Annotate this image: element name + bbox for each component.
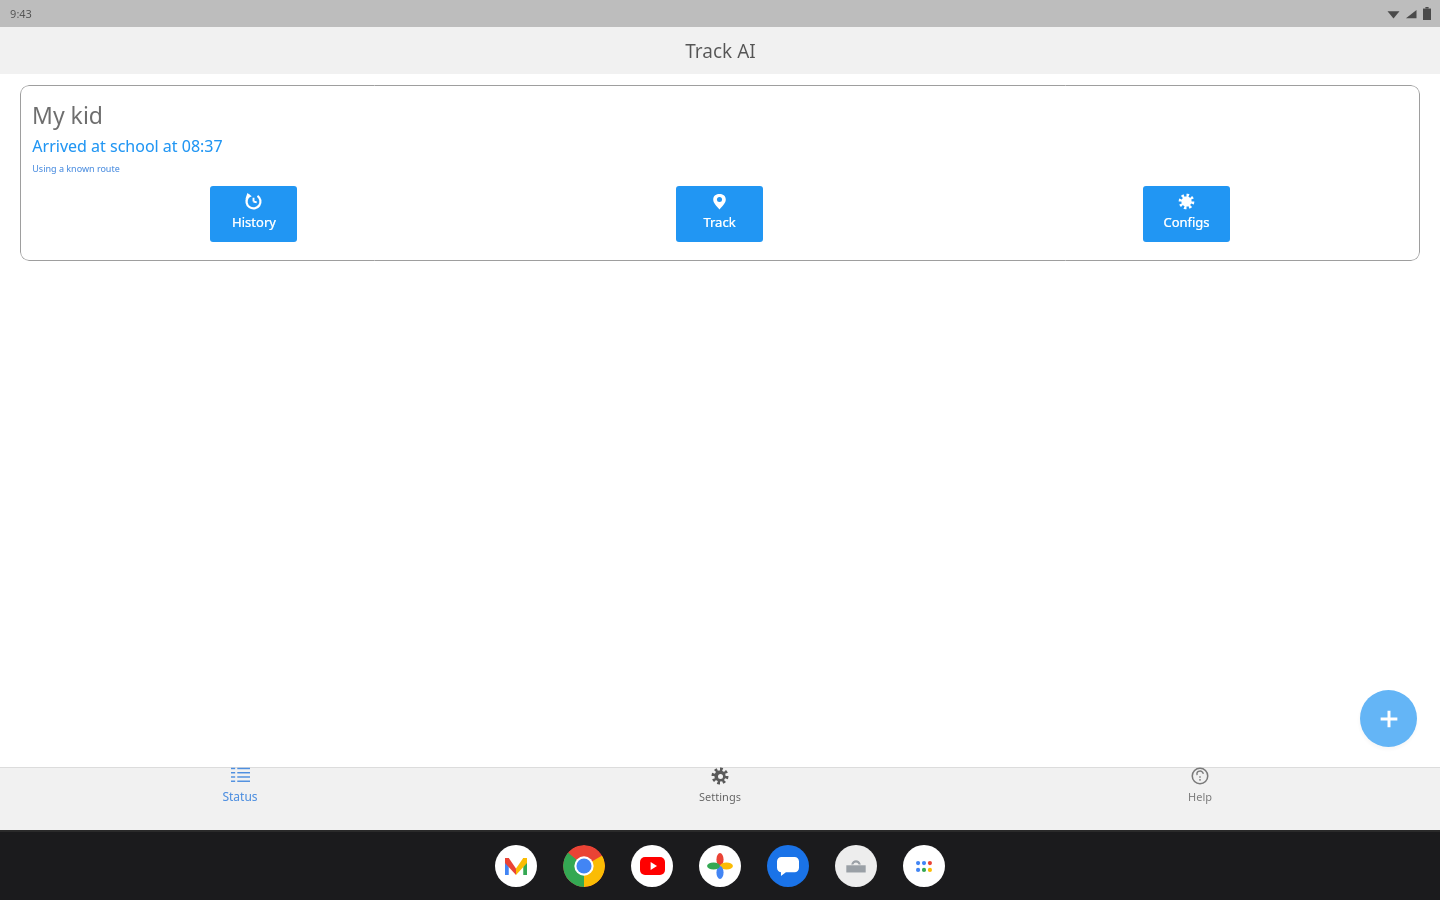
staticText: Help (1188, 789, 1212, 804)
button[interactable]: Gmail (495, 845, 537, 887)
button[interactable]: Help (960, 768, 1440, 805)
staticText: Track AI (685, 38, 756, 64)
staticText: Arrived at school at 08:37 (32, 135, 223, 157)
staticText: Settings (699, 789, 741, 804)
staticText: Configs (1163, 213, 1210, 231)
button[interactable]: Settings (480, 768, 960, 805)
button[interactable]: Messages (767, 845, 809, 887)
staticText: History (232, 213, 276, 231)
staticText: 9:43 (10, 6, 32, 21)
button[interactable]: Files (835, 845, 877, 887)
button[interactable]: Track (676, 186, 763, 242)
staticText: Track (703, 213, 736, 231)
staticText: My kid (32, 99, 103, 130)
button[interactable]: Chrome (563, 845, 605, 887)
staticText: Using a known route (32, 162, 120, 174)
button[interactable]: Add (1360, 690, 1417, 747)
button[interactable]: History (210, 186, 297, 242)
button[interactable]: Status (0, 768, 480, 805)
staticText: Status (222, 788, 258, 804)
button[interactable]: YouTube (631, 845, 673, 887)
button[interactable]: Photos (699, 845, 741, 887)
button[interactable]: Configs (1143, 186, 1230, 242)
button[interactable]: My kid (20, 85, 1420, 261)
button[interactable]: All apps (903, 845, 945, 887)
